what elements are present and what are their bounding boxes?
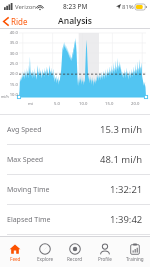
staticText: 35.0 xyxy=(9,40,18,46)
staticText: 15.0 xyxy=(9,82,18,88)
staticText: Training xyxy=(126,256,144,262)
staticText: 40.0 xyxy=(9,30,18,36)
button[interactable]: Avg Speed xyxy=(0,115,150,144)
button[interactable]: Ride xyxy=(0,14,34,29)
staticText: 1:32:21 xyxy=(110,183,143,196)
staticText: Record xyxy=(67,256,83,262)
staticText: Ride xyxy=(11,16,28,27)
staticText: 20.0 xyxy=(9,71,18,77)
button[interactable]: Elapsed Time xyxy=(0,205,150,234)
staticText: Profile xyxy=(98,256,112,262)
staticText: Verizon xyxy=(15,3,37,11)
staticText: Explore xyxy=(37,256,54,262)
button[interactable]: Explore xyxy=(30,237,60,267)
staticText: mi xyxy=(28,101,33,107)
staticText: 30.0 xyxy=(9,51,18,57)
staticText: Moving Time xyxy=(7,185,50,195)
staticText: 20.0 xyxy=(131,101,140,107)
button[interactable]: Record xyxy=(60,237,90,267)
button[interactable]: Feed xyxy=(0,237,30,267)
staticText: 10.0 xyxy=(9,92,18,98)
staticText: 8:23 PM xyxy=(63,2,88,11)
button[interactable]: Profile xyxy=(90,237,120,267)
button[interactable]: Training xyxy=(120,237,150,267)
staticText: Max Speed xyxy=(7,155,44,165)
staticText: Elapsed Time xyxy=(7,215,51,225)
staticText: mi/h xyxy=(1,94,9,99)
staticText: Feed xyxy=(10,256,21,262)
staticText: Analysis xyxy=(58,15,92,27)
staticText: 81% xyxy=(122,3,134,11)
staticText: 5.0 xyxy=(54,101,60,107)
button[interactable]: Moving Time xyxy=(0,175,150,204)
staticText: Avg Speed xyxy=(7,125,42,135)
staticText: 15.3 mi/h xyxy=(100,123,143,136)
staticText: 10.0 xyxy=(79,101,88,107)
staticText: 15.0 xyxy=(105,101,114,107)
staticText: 1:39:42 xyxy=(110,213,143,226)
staticText: 25.0 xyxy=(9,61,18,67)
button[interactable]: Max Speed xyxy=(0,145,150,174)
staticText: 48.1 mi/h xyxy=(100,153,143,166)
